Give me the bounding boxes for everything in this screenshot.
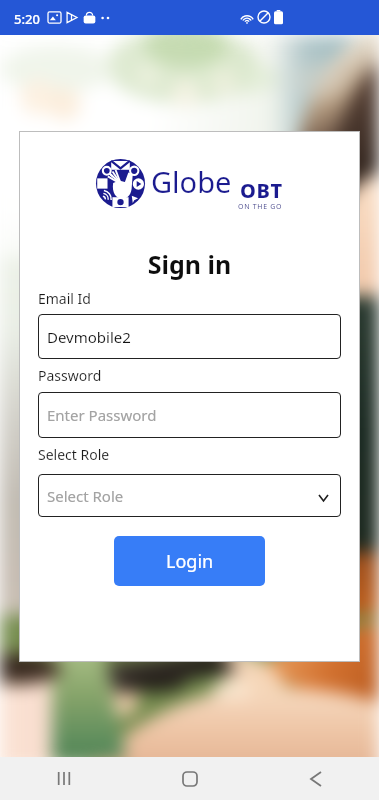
staticText: Globe bbox=[151, 162, 232, 201]
button[interactable]: Select Role bbox=[38, 474, 341, 517]
button[interactable]: Enter Password bbox=[38, 392, 341, 438]
staticText: Devmobile2 bbox=[47, 327, 131, 347]
staticText: Login bbox=[166, 549, 214, 574]
staticText: Password bbox=[38, 366, 102, 385]
staticText: Select Role bbox=[47, 486, 124, 506]
staticText: OBT bbox=[240, 177, 283, 204]
button[interactable]: Login bbox=[114, 536, 265, 586]
button[interactable]: Devmobile2 bbox=[38, 314, 341, 359]
staticText: ON THE GO bbox=[238, 202, 283, 212]
button[interactable]: Back bbox=[253, 757, 379, 800]
button[interactable]: Home bbox=[127, 757, 253, 800]
staticText: Sign in bbox=[19, 247, 360, 281]
staticText: Select Role bbox=[38, 445, 110, 464]
button[interactable]: Recent apps bbox=[0, 757, 127, 800]
staticText: Email Id bbox=[38, 289, 91, 308]
staticText: Enter Password bbox=[47, 405, 157, 425]
staticText: 5:20 bbox=[14, 10, 40, 28]
